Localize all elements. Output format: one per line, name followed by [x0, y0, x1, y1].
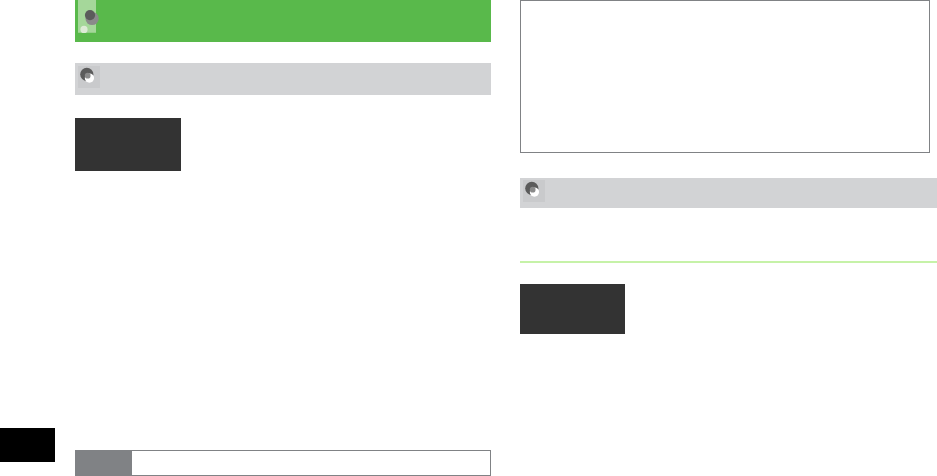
button[interactable]: Section badge — [520, 178, 937, 208]
button[interactable]: Section badge — [75, 63, 491, 95]
other: Section badge — [78, 66, 100, 88]
other: Account badge — [78, 0, 108, 42]
button[interactable]: Content panel — [520, 0, 930, 153]
other: Section badge — [523, 180, 545, 202]
button[interactable] — [75, 450, 491, 476]
button[interactable]: Account badge — [75, 0, 491, 42]
